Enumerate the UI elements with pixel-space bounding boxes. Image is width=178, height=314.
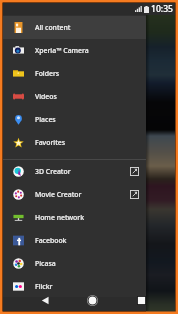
staticText: Favorites [35,138,66,147]
staticText: 3D Creator [35,167,71,176]
button[interactable]: Flickr [3,275,146,298]
button[interactable]: Movie Creator [3,183,146,206]
staticText: Places [35,115,56,124]
button[interactable]: Facebook [3,229,146,252]
button[interactable]: Picasa [3,252,146,275]
button[interactable]: Folders [3,62,146,85]
button[interactable]: Videos [3,85,146,108]
button[interactable]: Recent apps [131,293,151,307]
staticText: Facebook [35,236,67,245]
button[interactable]: Xperia™ Camera [3,39,146,62]
staticText: Videos [35,92,57,101]
staticText: Xperia™ Camera [35,46,89,55]
staticText: Flickr [35,282,53,291]
button[interactable]: Back [34,293,54,307]
staticText: Movie Creator [35,190,82,199]
staticText: All content [35,23,71,32]
staticText: Home network [35,213,85,222]
button[interactable]: Home [81,293,103,307]
staticText: Picasa [35,259,56,268]
button[interactable]: Places [3,108,146,131]
button[interactable]: 3D Creator [3,160,146,183]
button[interactable]: Home network [3,206,146,229]
staticText: Folders [35,69,60,78]
staticText: 10:35 [151,3,174,15]
button[interactable]: All content [3,16,146,39]
button[interactable]: Favorites [3,131,146,154]
